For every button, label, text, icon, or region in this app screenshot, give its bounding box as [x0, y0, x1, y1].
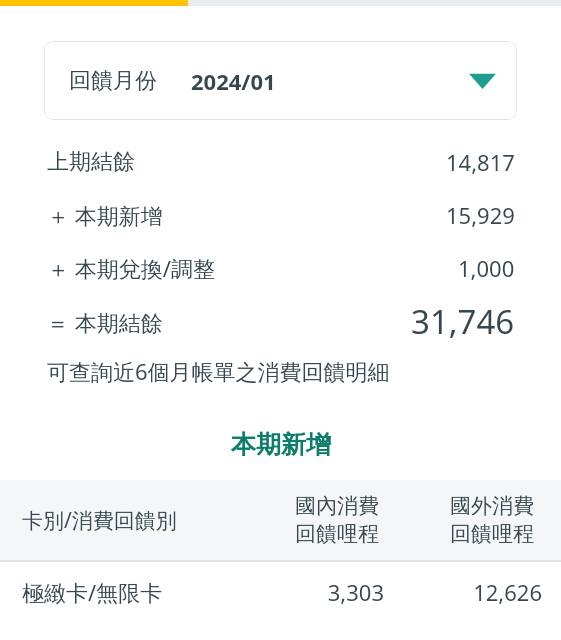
staticText: 極緻卡/無限卡: [22, 577, 163, 607]
staticText: 12,626: [450, 577, 542, 607]
staticText: 2024/01: [191, 66, 276, 96]
staticText: ＝ 本期結餘: [47, 307, 163, 337]
staticText: 上期結餘: [47, 148, 135, 176]
staticText: 31,746: [411, 299, 515, 344]
staticText: ＋ 本期兌換/調整: [47, 253, 215, 283]
staticText: 國內消費 回饋哩程: [295, 493, 379, 547]
staticText: 14,817: [446, 147, 515, 177]
staticText: 15,929: [446, 200, 515, 230]
staticText: 卡別/消費回饋別: [22, 506, 177, 535]
staticText: 國外消費 回饋哩程: [450, 493, 534, 547]
staticText: ＋ 本期新增: [47, 200, 163, 230]
staticText: 3,303: [295, 577, 384, 607]
button[interactable]: 回饋月份: [44, 41, 517, 120]
staticText: 回饋月份: [69, 67, 157, 95]
staticText: 1,000: [458, 253, 515, 283]
staticText: 本期新增: [231, 429, 331, 460]
other: Select feedback month: [469, 72, 496, 89]
staticText: 可查詢近6個月帳單之消費回饋明細: [47, 356, 390, 386]
button[interactable]: 極緻卡/無限卡: [0, 562, 561, 622]
